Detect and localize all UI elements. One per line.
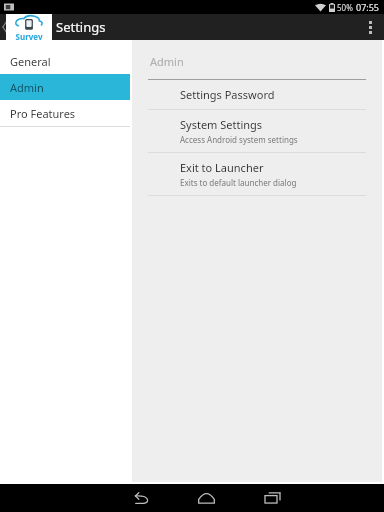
button[interactable]: General	[0, 48, 130, 74]
button[interactable]: Back	[120, 484, 160, 512]
button[interactable]: Survey Node logo	[6, 14, 52, 40]
staticText: Survey Node	[6, 31, 52, 40]
button[interactable]: Home	[186, 484, 226, 512]
staticText: Exit to Launcher	[180, 160, 264, 175]
staticText: Access Android system settings	[180, 134, 298, 145]
staticText: 50%	[337, 2, 353, 13]
staticText: Admin	[10, 80, 44, 95]
staticText: Admin	[150, 54, 184, 69]
button[interactable]: More options	[356, 14, 384, 40]
staticText: Pro Features	[10, 106, 76, 121]
button[interactable]: Pro Features	[0, 100, 130, 126]
staticText: System Settings	[180, 117, 263, 132]
staticText: Settings	[56, 18, 106, 36]
staticText: General	[10, 54, 51, 69]
staticText: Settings Password	[180, 87, 275, 102]
button[interactable]: Admin	[0, 74, 130, 100]
button[interactable]: Settings Password	[132, 80, 382, 109]
staticText: 07:55	[356, 1, 380, 13]
staticText: Exits to default launcher dialog	[180, 177, 297, 188]
button[interactable]: Recent apps	[252, 484, 292, 512]
button[interactable]: Exit to Launcher	[132, 153, 382, 195]
button[interactable]: System Settings	[132, 110, 382, 152]
